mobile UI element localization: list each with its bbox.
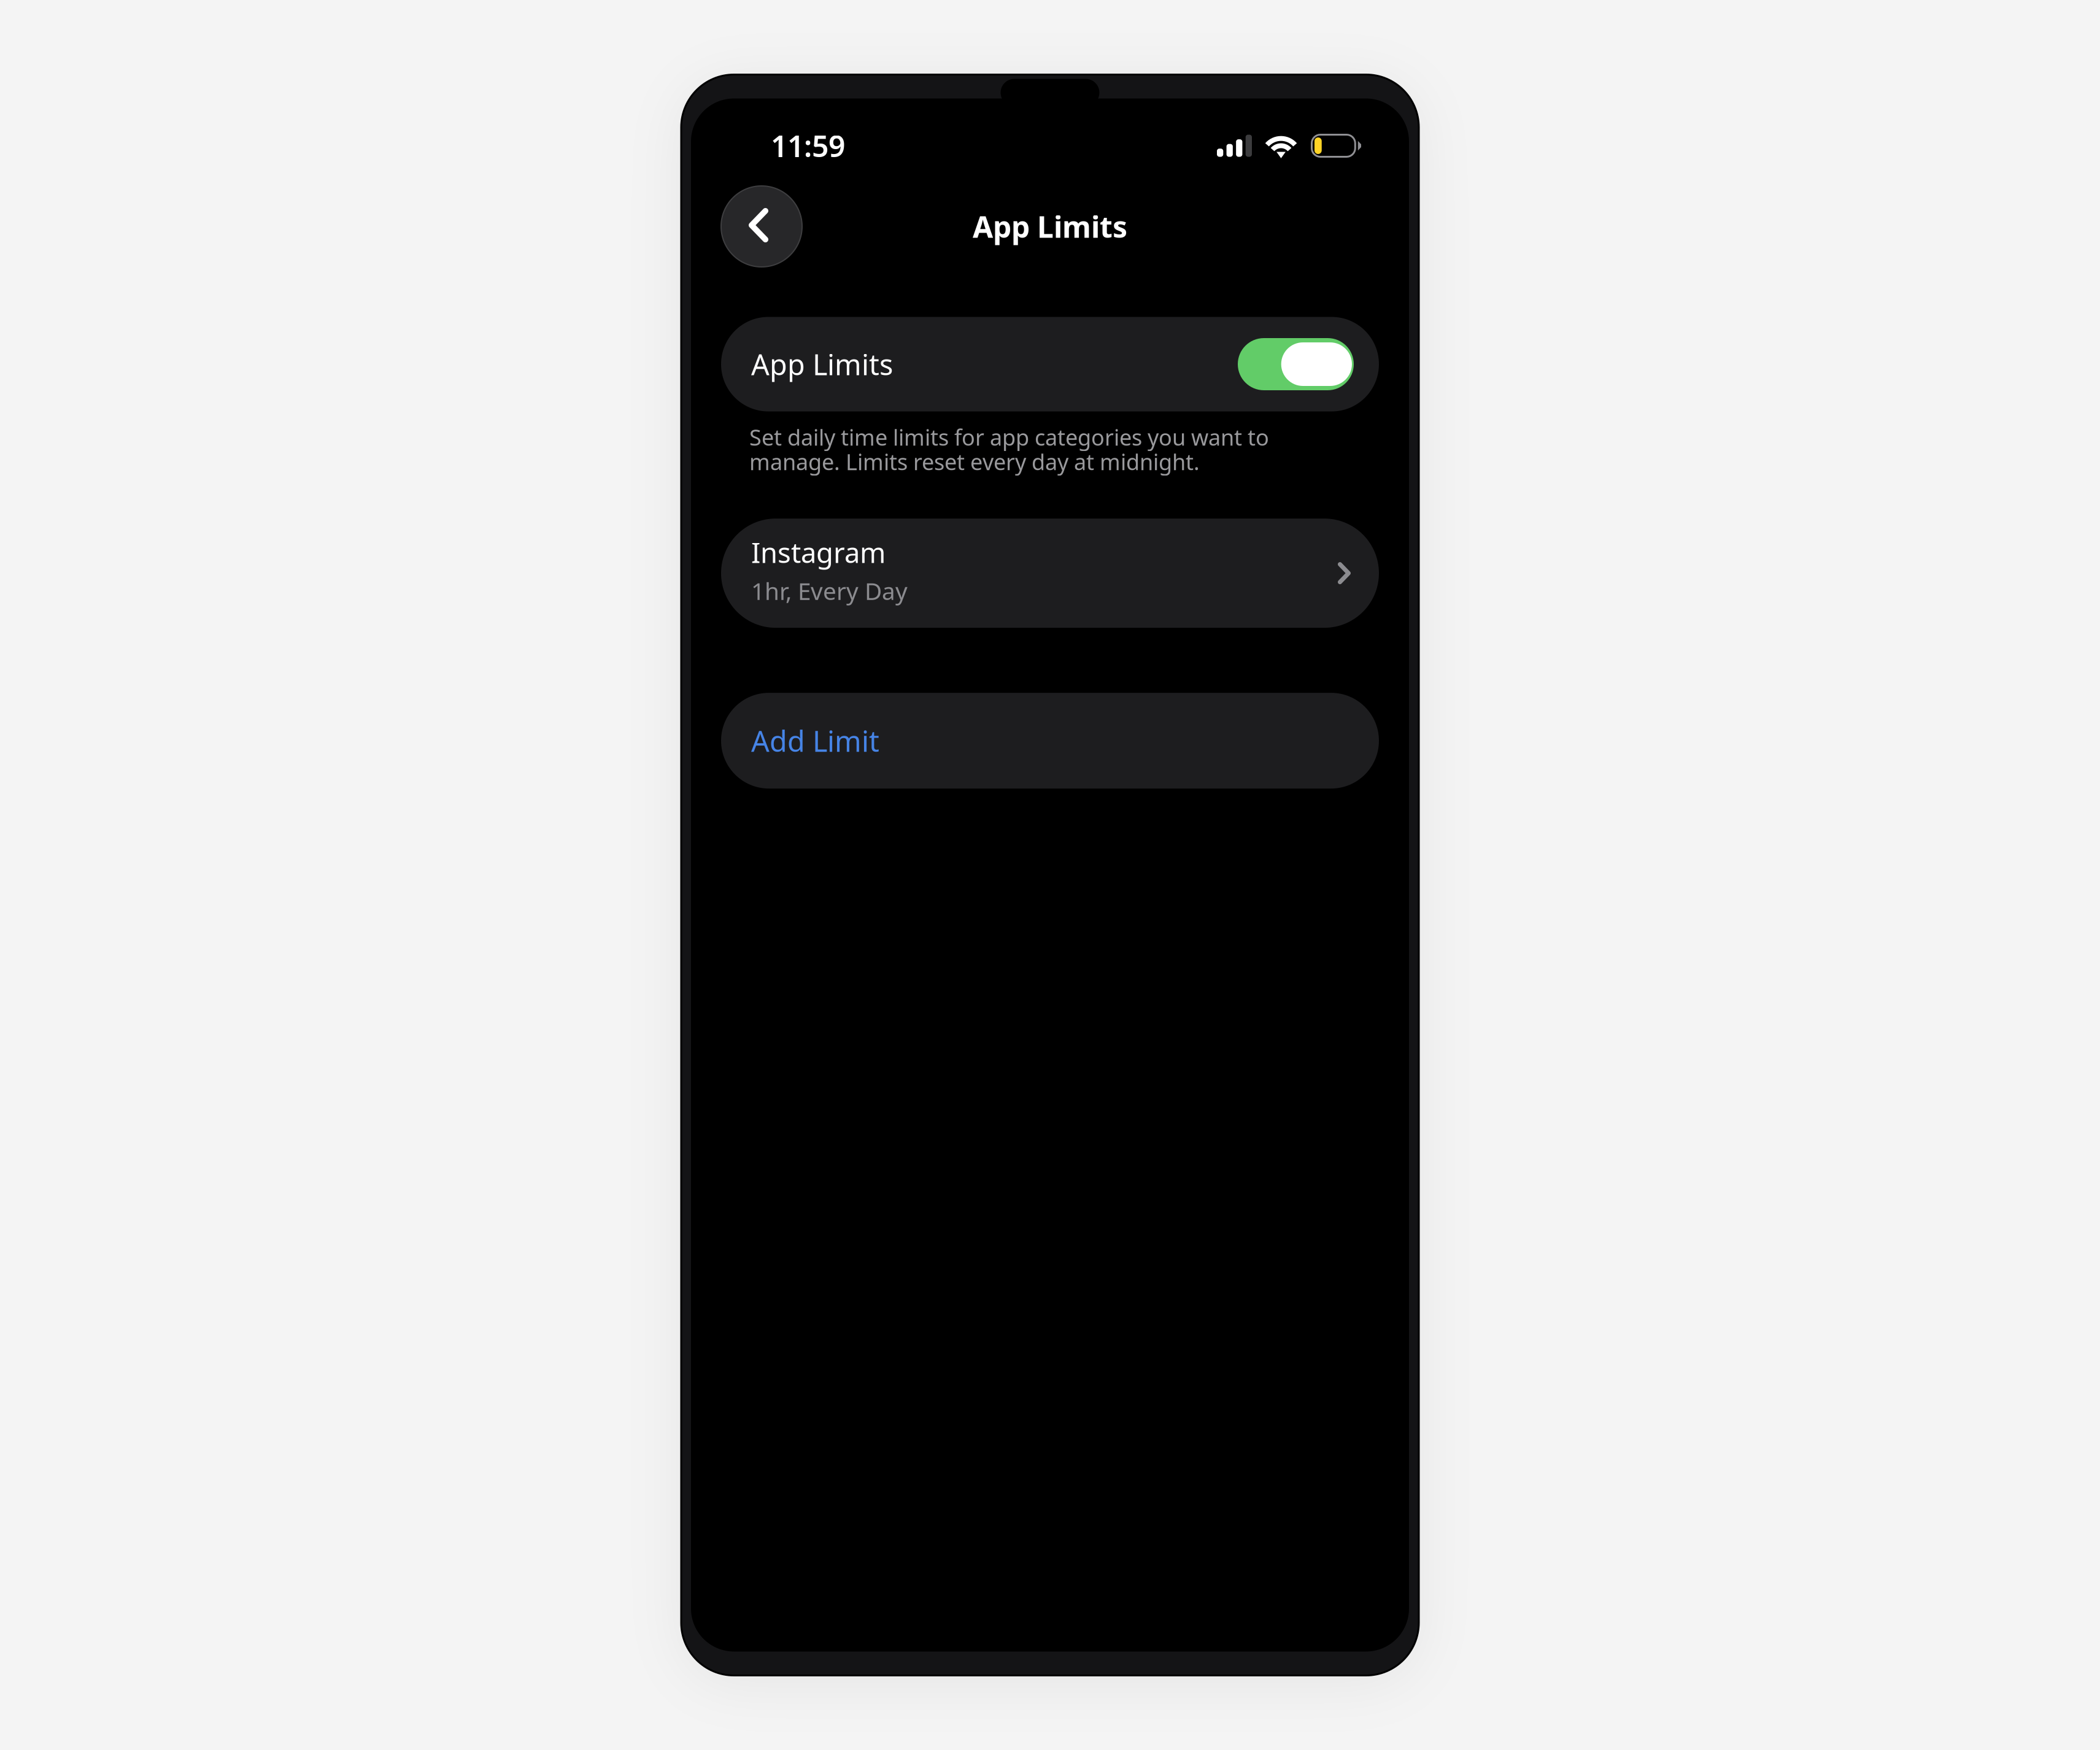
button[interactable]: App Limits [721,317,1379,411]
staticText: Set daily time limits for app categories… [749,422,1269,476]
staticText: App Limits [751,345,893,383]
staticText: Add Limit [751,722,879,760]
staticText: 1hr, Every Day [751,575,908,606]
staticText: App Limits [973,207,1127,246]
button[interactable]: Back [721,186,802,267]
staticText: Instagram [751,534,886,571]
staticText: 11:59 [771,126,845,165]
button[interactable]: Add Limit [721,693,1379,789]
button[interactable]: Instagram [721,519,1379,628]
